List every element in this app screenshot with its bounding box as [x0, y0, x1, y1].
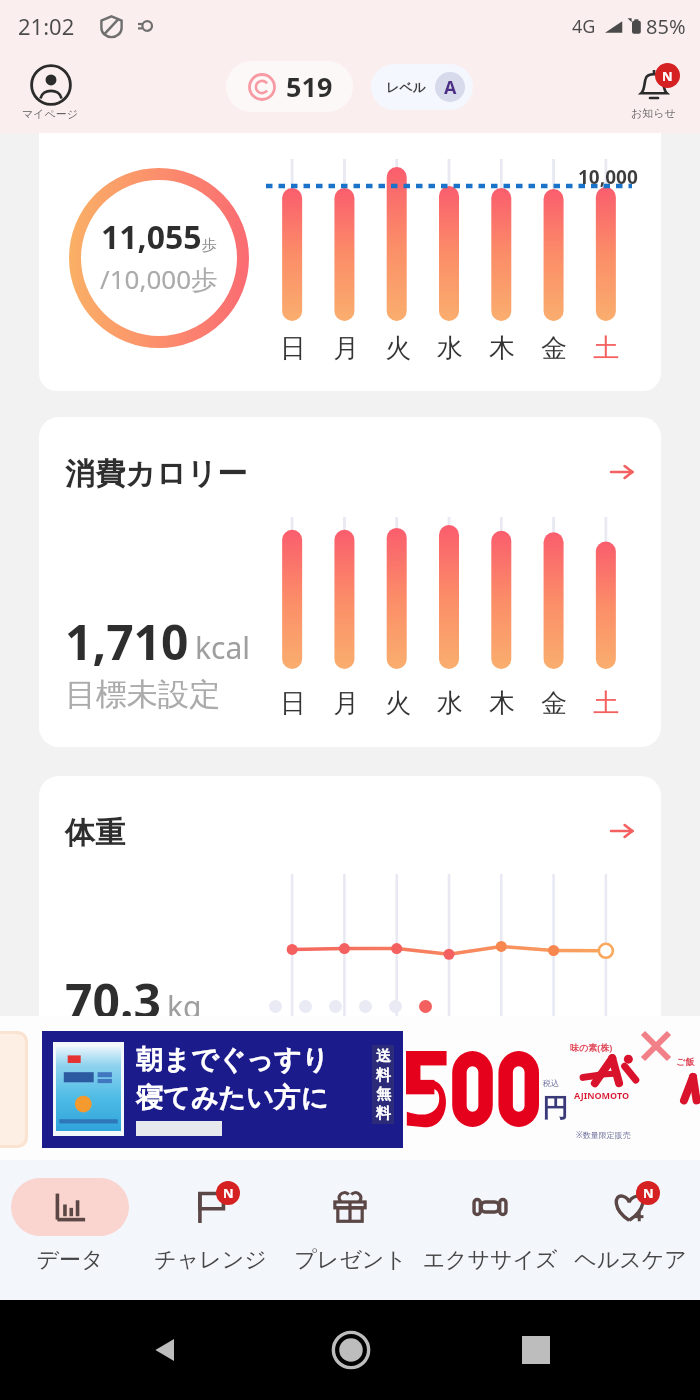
- staticText: マイページ: [22, 107, 79, 121]
- button[interactable]: N: [140, 1152, 280, 1300]
- staticText: 円: [542, 1092, 568, 1125]
- button[interactable]: マイページ: [18, 62, 83, 123]
- staticText: N: [223, 1184, 234, 1202]
- staticText: 料: [376, 1066, 391, 1085]
- button[interactable]: Back: [150, 1335, 180, 1365]
- button[interactable]: 消費カロリー: [39, 417, 661, 747]
- staticText: 消費カロリー: [65, 455, 248, 493]
- button[interactable]: 519: [226, 61, 353, 112]
- staticText: 4G: [572, 14, 596, 39]
- button[interactable]: 11,055: [39, 133, 661, 391]
- staticText: 21:02: [18, 11, 75, 41]
- staticText: 月: [333, 687, 359, 720]
- staticText: 日: [280, 332, 306, 365]
- staticText: kg: [167, 986, 202, 1027]
- button[interactable]: お知らせ: [627, 64, 680, 122]
- button[interactable]: データ: [0, 1152, 140, 1300]
- staticText: 朝までぐっすり: [136, 1043, 329, 1077]
- staticText: 送: [376, 1047, 391, 1066]
- staticText: 土: [593, 687, 619, 720]
- staticText: 歩: [202, 236, 217, 255]
- button[interactable]: Home: [330, 1329, 372, 1371]
- staticText: お知らせ: [631, 106, 676, 120]
- staticText: N: [662, 67, 673, 85]
- staticText: 70.3: [65, 968, 161, 1033]
- staticText: 土: [593, 332, 619, 365]
- staticText: プレゼント: [294, 1246, 407, 1274]
- staticText: 木: [489, 332, 515, 365]
- staticText: 料: [376, 1104, 391, 1123]
- staticText: 金: [541, 332, 567, 365]
- staticText: ご飯: [676, 1056, 695, 1067]
- staticText: 10,000: [578, 164, 638, 190]
- staticText: AJINOMOTO: [574, 1089, 630, 1101]
- staticText: 味の素(株): [570, 1041, 613, 1053]
- staticText: kcal: [195, 627, 250, 668]
- staticText: 寝てみたい方に: [136, 1081, 329, 1115]
- staticText: 水: [437, 332, 463, 365]
- staticText: 日: [280, 687, 306, 720]
- staticText: N: [643, 1184, 654, 1202]
- button[interactable]: プレゼント: [280, 1152, 420, 1300]
- button[interactable]: レベル: [371, 64, 473, 110]
- staticText: 519: [286, 68, 333, 105]
- staticText: レベル: [386, 79, 426, 95]
- button[interactable]: N: [560, 1152, 700, 1300]
- staticText: 無: [376, 1085, 391, 1104]
- staticText: 火: [385, 332, 411, 365]
- button[interactable]: エクササイズ: [420, 1152, 560, 1300]
- staticText: チャレンジ: [154, 1246, 267, 1274]
- staticText: 月: [333, 332, 359, 365]
- staticText: ※数量限定販売: [576, 1129, 631, 1140]
- staticText: データ: [36, 1246, 104, 1274]
- staticText: 体重: [65, 814, 125, 852]
- staticText: 火: [385, 687, 411, 720]
- staticText: ヘルスケア: [574, 1246, 687, 1274]
- staticText: 木: [489, 687, 515, 720]
- button[interactable]: 閉じる: [643, 1033, 669, 1059]
- staticText: 税込: [543, 1078, 559, 1088]
- staticText: 目標未設定: [65, 675, 220, 714]
- staticText: 1,710: [65, 609, 189, 674]
- staticText: 水: [437, 687, 463, 720]
- staticText: エクササイズ: [422, 1246, 558, 1274]
- staticText: 金: [541, 687, 567, 720]
- staticText: /10,000歩: [100, 261, 218, 297]
- button[interactable]: 体重: [39, 776, 661, 1076]
- staticText: 11,055: [101, 215, 202, 259]
- staticText: A: [444, 75, 457, 100]
- staticText: 85%: [646, 13, 686, 40]
- button[interactable]: 朝までぐっすり: [42, 1031, 403, 1148]
